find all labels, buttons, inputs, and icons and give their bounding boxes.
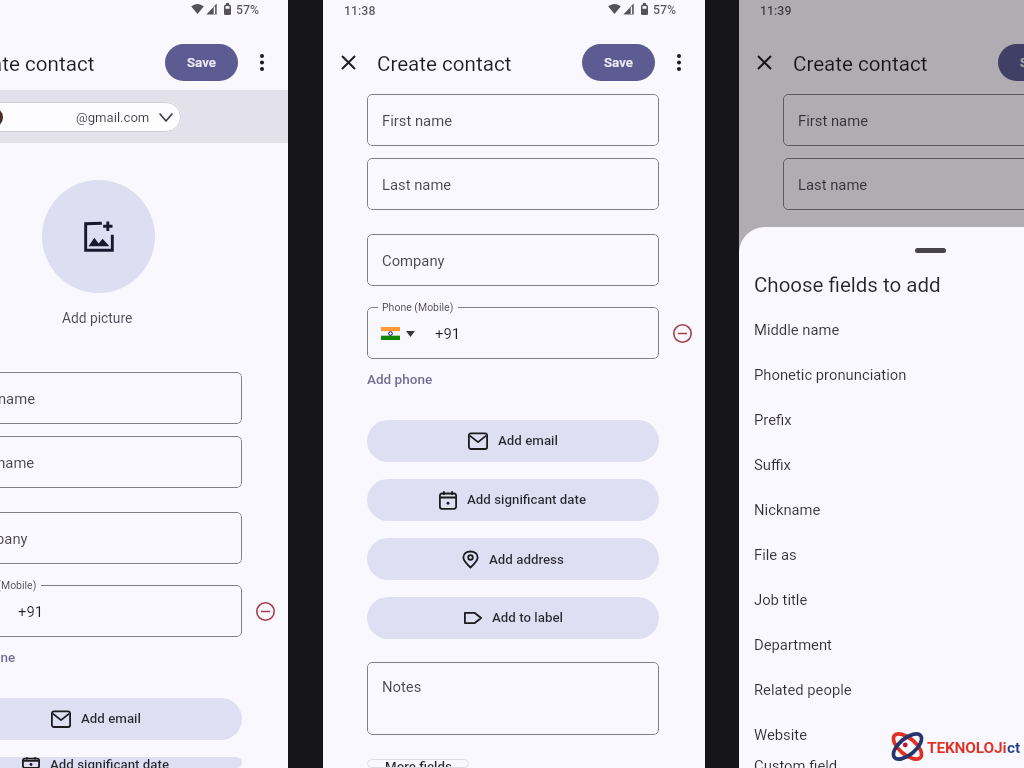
staticText: Create contact bbox=[0, 52, 95, 76]
staticText: Last name bbox=[382, 176, 452, 193]
button[interactable]: Last name bbox=[783, 158, 1024, 210]
button[interactable]: Save bbox=[582, 44, 655, 81]
staticText: Choose fields to add bbox=[754, 273, 941, 297]
button[interactable]: @gmail.com bbox=[0, 102, 181, 132]
staticText: Add picture bbox=[62, 310, 133, 326]
button[interactable]: Add phone bbox=[367, 371, 433, 387]
staticText: Last name bbox=[798, 176, 868, 193]
staticText: Phone (Mobile) bbox=[0, 579, 37, 591]
button[interactable]: Last name bbox=[0, 436, 242, 488]
button[interactable]: Add significant date bbox=[0, 757, 242, 768]
button[interactable]: Company bbox=[783, 234, 1024, 286]
staticText: 11:39 bbox=[760, 3, 792, 18]
staticText: Department bbox=[754, 636, 832, 653]
button[interactable]: Website bbox=[739, 712, 1024, 757]
button[interactable]: Add picture bbox=[42, 180, 155, 293]
staticText: Save bbox=[187, 55, 216, 71]
staticText: First name bbox=[798, 112, 868, 129]
staticText: 57% bbox=[236, 2, 260, 17]
staticText: First name bbox=[0, 390, 35, 407]
button[interactable]: More options bbox=[247, 47, 277, 77]
button[interactable]: +91 bbox=[0, 585, 242, 637]
button[interactable]: Prefix bbox=[739, 397, 1024, 442]
staticText: Create contact bbox=[377, 52, 512, 76]
staticText: Add email bbox=[81, 711, 141, 727]
staticText: Suffix bbox=[754, 456, 791, 473]
button[interactable]: Related people bbox=[739, 667, 1024, 712]
staticText: First name bbox=[382, 112, 452, 129]
button[interactable]: Add phone bbox=[0, 649, 16, 665]
button[interactable]: Add email bbox=[0, 698, 242, 740]
button[interactable]: Save bbox=[165, 44, 238, 81]
button[interactable]: Add address bbox=[367, 538, 659, 580]
button[interactable]: Add phone bbox=[783, 371, 849, 387]
button[interactable]: Notes bbox=[367, 662, 659, 735]
staticText: Create contact bbox=[793, 52, 928, 76]
button[interactable]: File as bbox=[739, 532, 1024, 577]
button[interactable]: Department bbox=[739, 622, 1024, 667]
button[interactable]: First name bbox=[783, 94, 1024, 146]
staticText: TEKNOLOJi bbox=[927, 739, 1007, 757]
button[interactable]: Suffix bbox=[739, 442, 1024, 487]
button[interactable]: First name bbox=[0, 372, 242, 424]
staticText: Save bbox=[604, 55, 633, 71]
staticText: +91 bbox=[435, 325, 461, 342]
button[interactable]: Phonetic pronunciation bbox=[739, 352, 1024, 397]
staticText: Notes bbox=[382, 678, 422, 695]
button[interactable]: Close bbox=[747, 45, 781, 79]
button[interactable]: More options bbox=[664, 47, 694, 77]
staticText: @gmail.com bbox=[76, 110, 150, 125]
staticText: 11:38 bbox=[344, 3, 376, 18]
staticText: Add significant date bbox=[467, 492, 587, 508]
button[interactable]: More fields bbox=[367, 759, 469, 768]
staticText: 57% bbox=[653, 2, 677, 17]
staticText: Nickname bbox=[754, 501, 821, 518]
button[interactable]: Remove phone bbox=[669, 320, 695, 346]
button[interactable]: Last name bbox=[367, 158, 659, 210]
staticText: Company bbox=[382, 252, 445, 269]
button[interactable]: Nickname bbox=[739, 487, 1024, 532]
staticText: ct bbox=[1007, 739, 1020, 757]
staticText: Prefix bbox=[754, 411, 792, 428]
staticText: Save bbox=[1020, 55, 1024, 71]
staticText: Add email bbox=[498, 433, 558, 449]
button[interactable]: +91 bbox=[367, 307, 659, 359]
staticText: Add to label bbox=[492, 610, 563, 626]
staticText: Add significant date bbox=[50, 757, 170, 768]
button[interactable]: Add to label bbox=[367, 597, 659, 639]
button[interactable]: Company bbox=[0, 512, 242, 564]
staticText: +91 bbox=[18, 603, 44, 620]
staticText: Job title bbox=[754, 591, 808, 608]
staticText: Phonetic pronunciation bbox=[754, 366, 907, 383]
staticText: Related people bbox=[754, 681, 852, 698]
staticText: Custom field bbox=[754, 757, 838, 768]
button[interactable]: Custom field bbox=[739, 757, 1024, 768]
staticText: Last name bbox=[0, 454, 35, 471]
button[interactable]: +91 bbox=[783, 307, 1024, 359]
staticText: Company bbox=[0, 530, 28, 547]
staticText: Phone (Mobile) bbox=[382, 301, 454, 313]
button[interactable]: Remove phone bbox=[252, 598, 278, 624]
button[interactable]: Close bbox=[331, 45, 365, 79]
button[interactable]: Company bbox=[367, 234, 659, 286]
staticText: More fields bbox=[385, 759, 452, 768]
button[interactable]: Save bbox=[998, 44, 1024, 81]
button[interactable]: Job title bbox=[739, 577, 1024, 622]
staticText: Add address bbox=[489, 552, 564, 568]
button[interactable]: Middle name bbox=[739, 307, 1024, 352]
staticText: Website bbox=[754, 726, 807, 743]
staticText: File as bbox=[754, 546, 797, 563]
button[interactable]: Add email bbox=[367, 420, 659, 462]
staticText: Middle name bbox=[754, 321, 840, 338]
button[interactable]: First name bbox=[367, 94, 659, 146]
button[interactable]: Add significant date bbox=[367, 479, 659, 521]
